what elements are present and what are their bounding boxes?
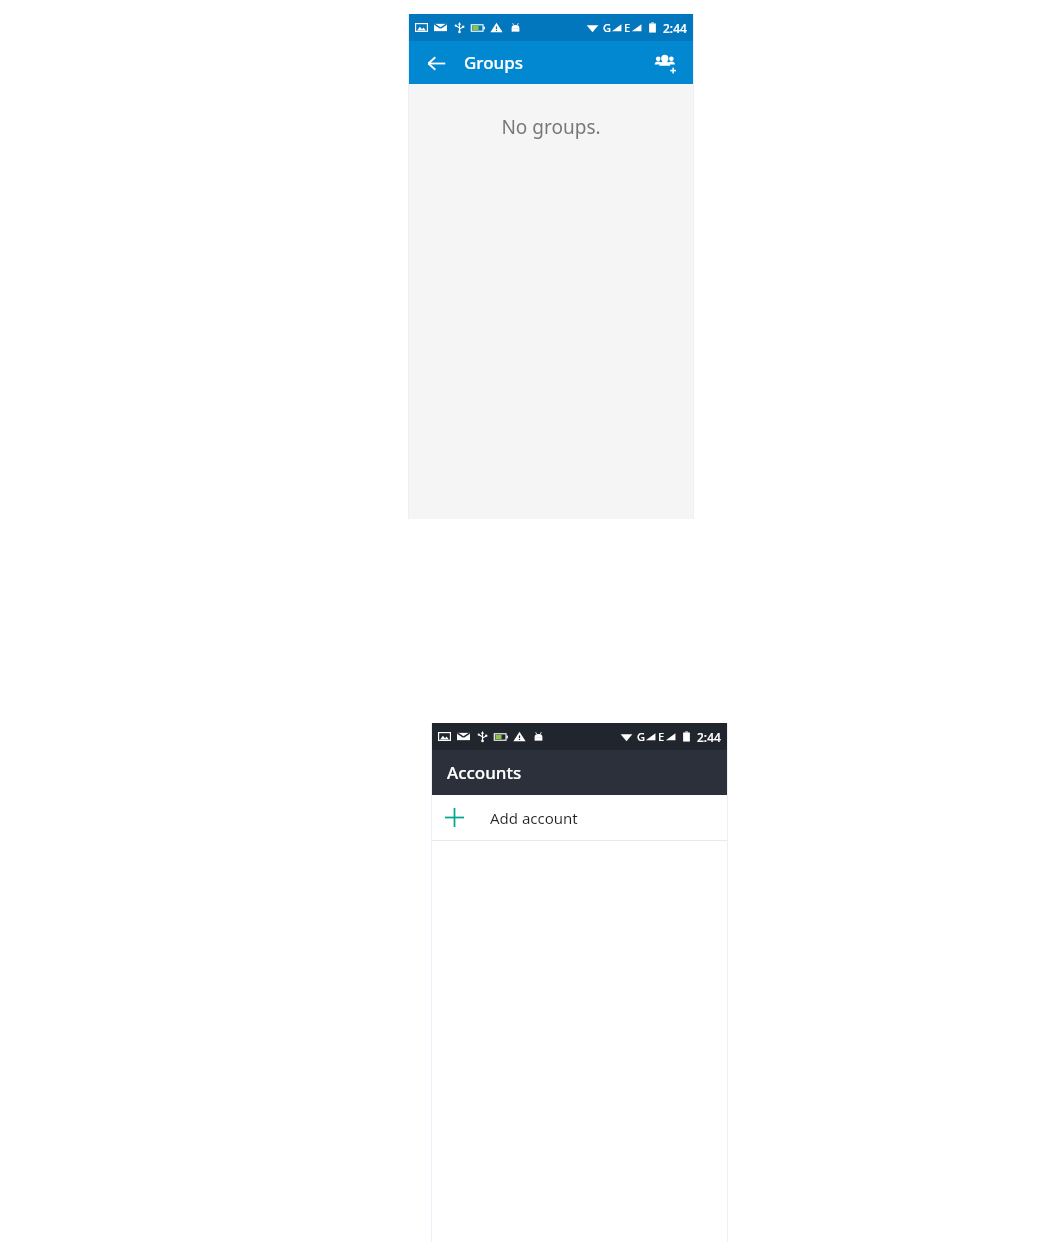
- staticText: Add account: [490, 808, 578, 828]
- button[interactable]: Create group: [650, 48, 680, 78]
- staticText: No groups.: [409, 114, 693, 140]
- staticText: Accounts: [447, 761, 522, 784]
- staticText: E: [658, 729, 665, 744]
- staticText: 2:44: [697, 729, 721, 745]
- staticText: 2:44: [663, 20, 687, 36]
- button[interactable]: Back: [422, 49, 450, 77]
- staticText: Groups: [464, 51, 524, 74]
- staticText: G: [637, 729, 645, 744]
- button[interactable]: Add account: [432, 795, 727, 840]
- staticText: G: [603, 20, 611, 35]
- staticText: E: [624, 20, 631, 35]
